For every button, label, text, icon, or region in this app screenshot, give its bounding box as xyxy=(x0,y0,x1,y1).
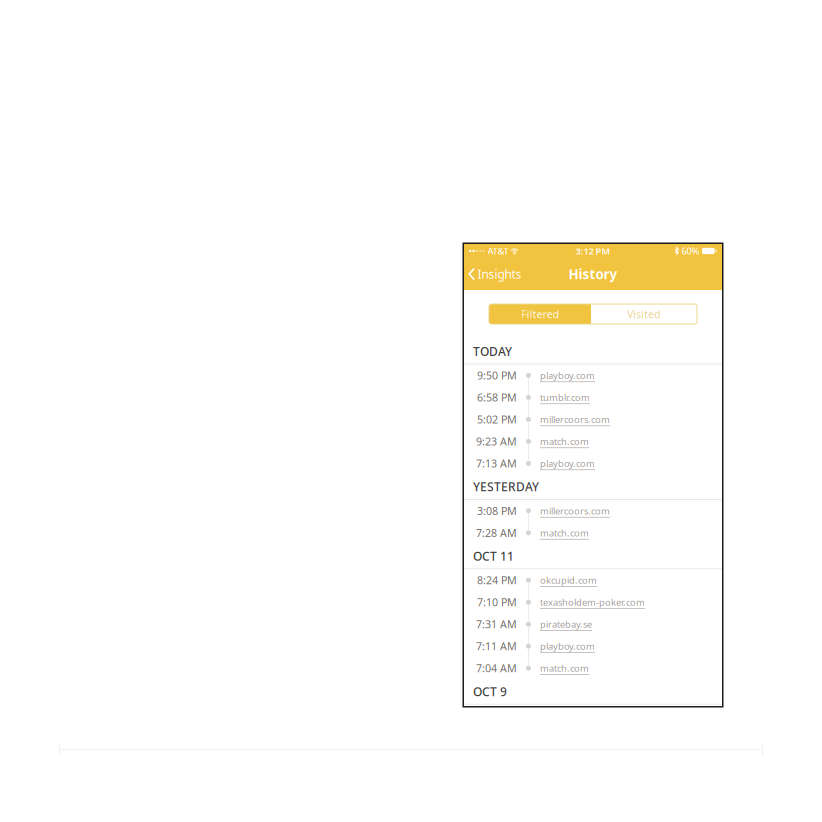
button[interactable]: 7:10 PM xyxy=(464,591,722,613)
staticText: Visited xyxy=(627,307,661,321)
staticText: piratebay.se xyxy=(540,618,592,630)
staticText: 7:10 PM xyxy=(477,595,517,609)
button[interactable]: Visited xyxy=(591,304,697,324)
staticText: 5:02 PM xyxy=(477,412,517,426)
staticText: TODAY xyxy=(473,343,512,359)
staticText: texasholdem-poker.com xyxy=(540,596,645,608)
button[interactable]: 9:23 AM xyxy=(464,430,722,452)
staticText: playboy.com xyxy=(540,640,595,652)
staticText: millercoors.com xyxy=(540,413,610,426)
staticText: millercoors.com xyxy=(540,505,610,517)
staticText: 6:58 PM xyxy=(477,390,517,404)
staticText: 60% xyxy=(682,245,700,257)
staticText: OCT 9 xyxy=(473,683,507,699)
button[interactable]: 8:24 PM xyxy=(464,569,722,591)
button[interactable]: 7:11 AM xyxy=(464,635,722,657)
staticText: 3:08 PM xyxy=(477,504,517,518)
staticText: 7:04 AM xyxy=(476,661,517,675)
button[interactable]: 3:08 PM xyxy=(464,500,722,522)
staticText: 7:31 AM xyxy=(476,617,517,631)
staticText: History xyxy=(568,265,617,283)
staticText: 7:13 AM xyxy=(476,456,517,470)
staticText: 9:23 AM xyxy=(476,434,517,448)
staticText: 9:50 PM xyxy=(477,368,517,382)
button[interactable]: 7:28 AM xyxy=(464,522,722,544)
staticText: Insights xyxy=(477,266,521,282)
button[interactable]: 9:50 PM xyxy=(464,364,722,386)
button[interactable]: 7:13 AM xyxy=(464,452,722,474)
staticText: tumblr.com xyxy=(540,391,590,404)
staticText: YESTERDAY xyxy=(473,479,539,495)
button[interactable]: 7:31 AM xyxy=(464,613,722,635)
staticText: match.com xyxy=(540,662,589,674)
staticText: 8:24 PM xyxy=(477,573,517,587)
staticText: OCT 11 xyxy=(473,548,514,564)
button[interactable]: 5:02 PM xyxy=(464,408,722,430)
staticText: playboy.com xyxy=(540,457,595,470)
button[interactable]: Insights xyxy=(464,261,527,287)
staticText: match.com xyxy=(540,435,589,448)
button[interactable]: 6:58 PM xyxy=(464,386,722,408)
staticText: AT&T xyxy=(487,245,508,257)
button[interactable]: Filtered xyxy=(489,304,591,324)
staticText: 3:12 PM xyxy=(575,245,610,257)
staticText: playboy.com xyxy=(540,369,595,382)
staticText: 7:28 AM xyxy=(476,526,517,540)
staticText: okcupid.com xyxy=(540,574,597,586)
staticText: Filtered xyxy=(520,307,559,321)
staticText: 7:11 AM xyxy=(476,639,517,653)
button[interactable]: 7:04 AM xyxy=(464,657,722,679)
staticText: match.com xyxy=(540,527,589,539)
